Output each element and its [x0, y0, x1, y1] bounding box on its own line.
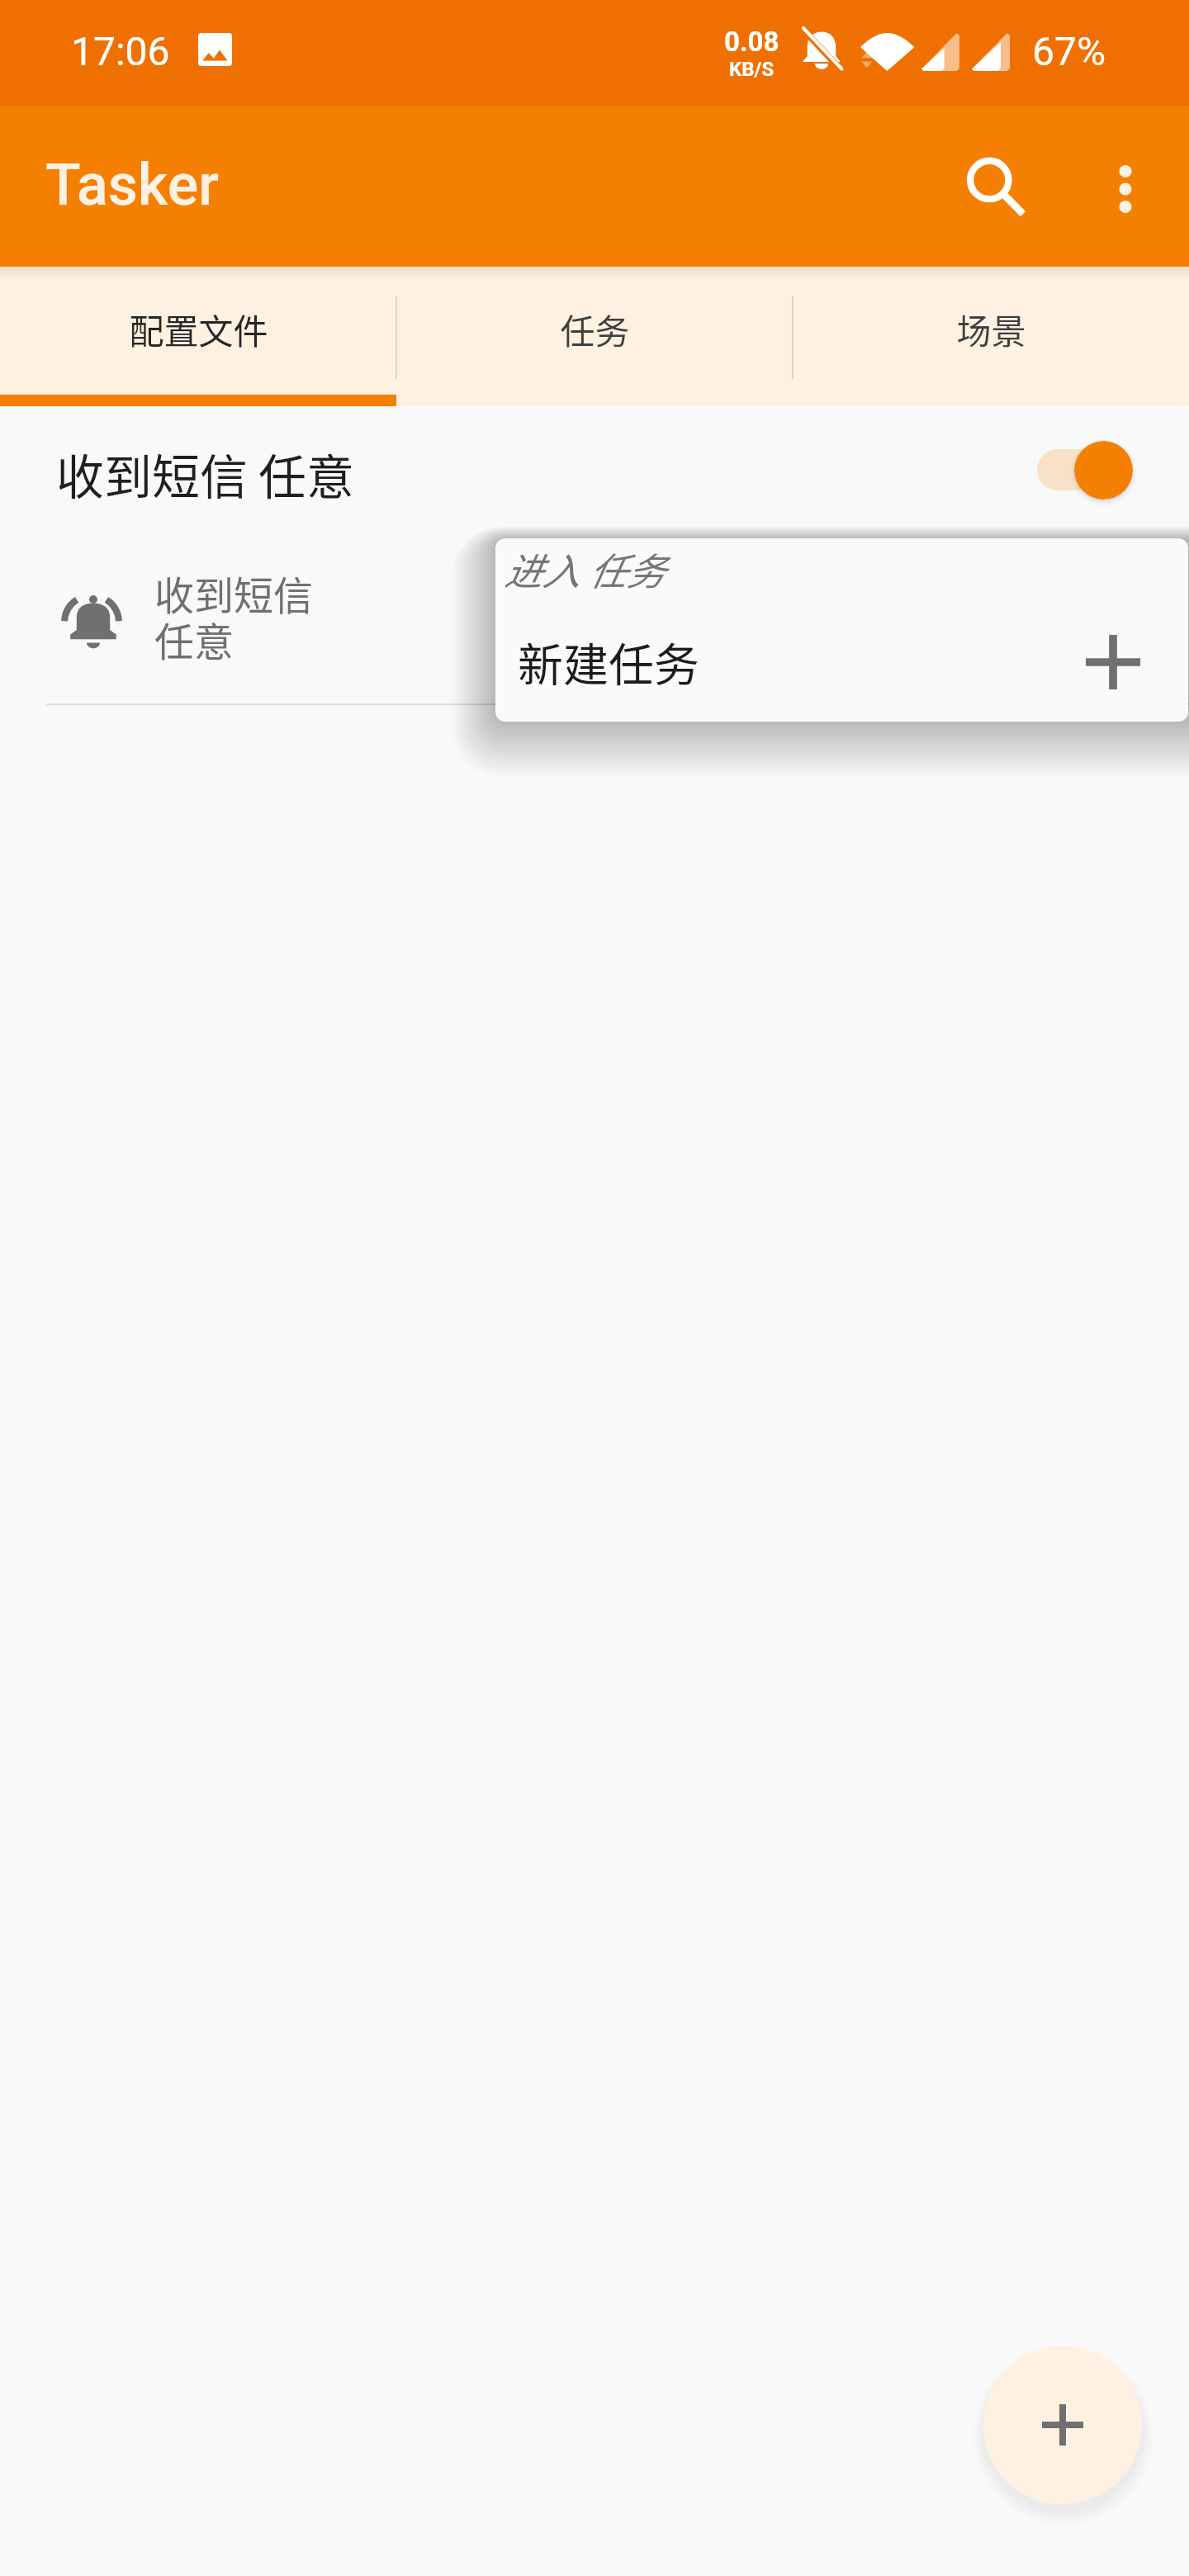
- staticText: 收到短信 任意: [154, 564, 314, 668]
- button[interactable]: More options: [1076, 140, 1175, 239]
- button[interactable]: 收到短信 任意: [0, 534, 1189, 703]
- staticText: 新建任务: [518, 628, 700, 694]
- staticText: 收到短信 任意: [56, 439, 354, 509]
- staticText: 场景: [956, 304, 1026, 354]
- staticText: 配置文件: [129, 304, 268, 354]
- staticText: 0.08: [724, 26, 779, 58]
- button[interactable]: Search: [947, 140, 1046, 239]
- button[interactable]: 场景: [793, 267, 1189, 406]
- button[interactable]: Enable profile: [1037, 433, 1133, 507]
- staticText: 任务: [560, 304, 630, 354]
- staticText: 17:06: [71, 28, 170, 74]
- staticText: Tasker: [45, 151, 219, 219]
- button[interactable]: 任务: [396, 267, 793, 406]
- button[interactable]: 配置文件: [0, 267, 396, 406]
- staticText: 进入 任务: [504, 542, 665, 597]
- button[interactable]: 新建任务: [495, 606, 1188, 722]
- staticText: KB/S: [729, 58, 775, 81]
- staticText: 67%: [1032, 28, 1106, 74]
- button[interactable]: Add profile: [983, 2346, 1142, 2504]
- button[interactable]: 收到短信 任意: [0, 406, 1189, 534]
